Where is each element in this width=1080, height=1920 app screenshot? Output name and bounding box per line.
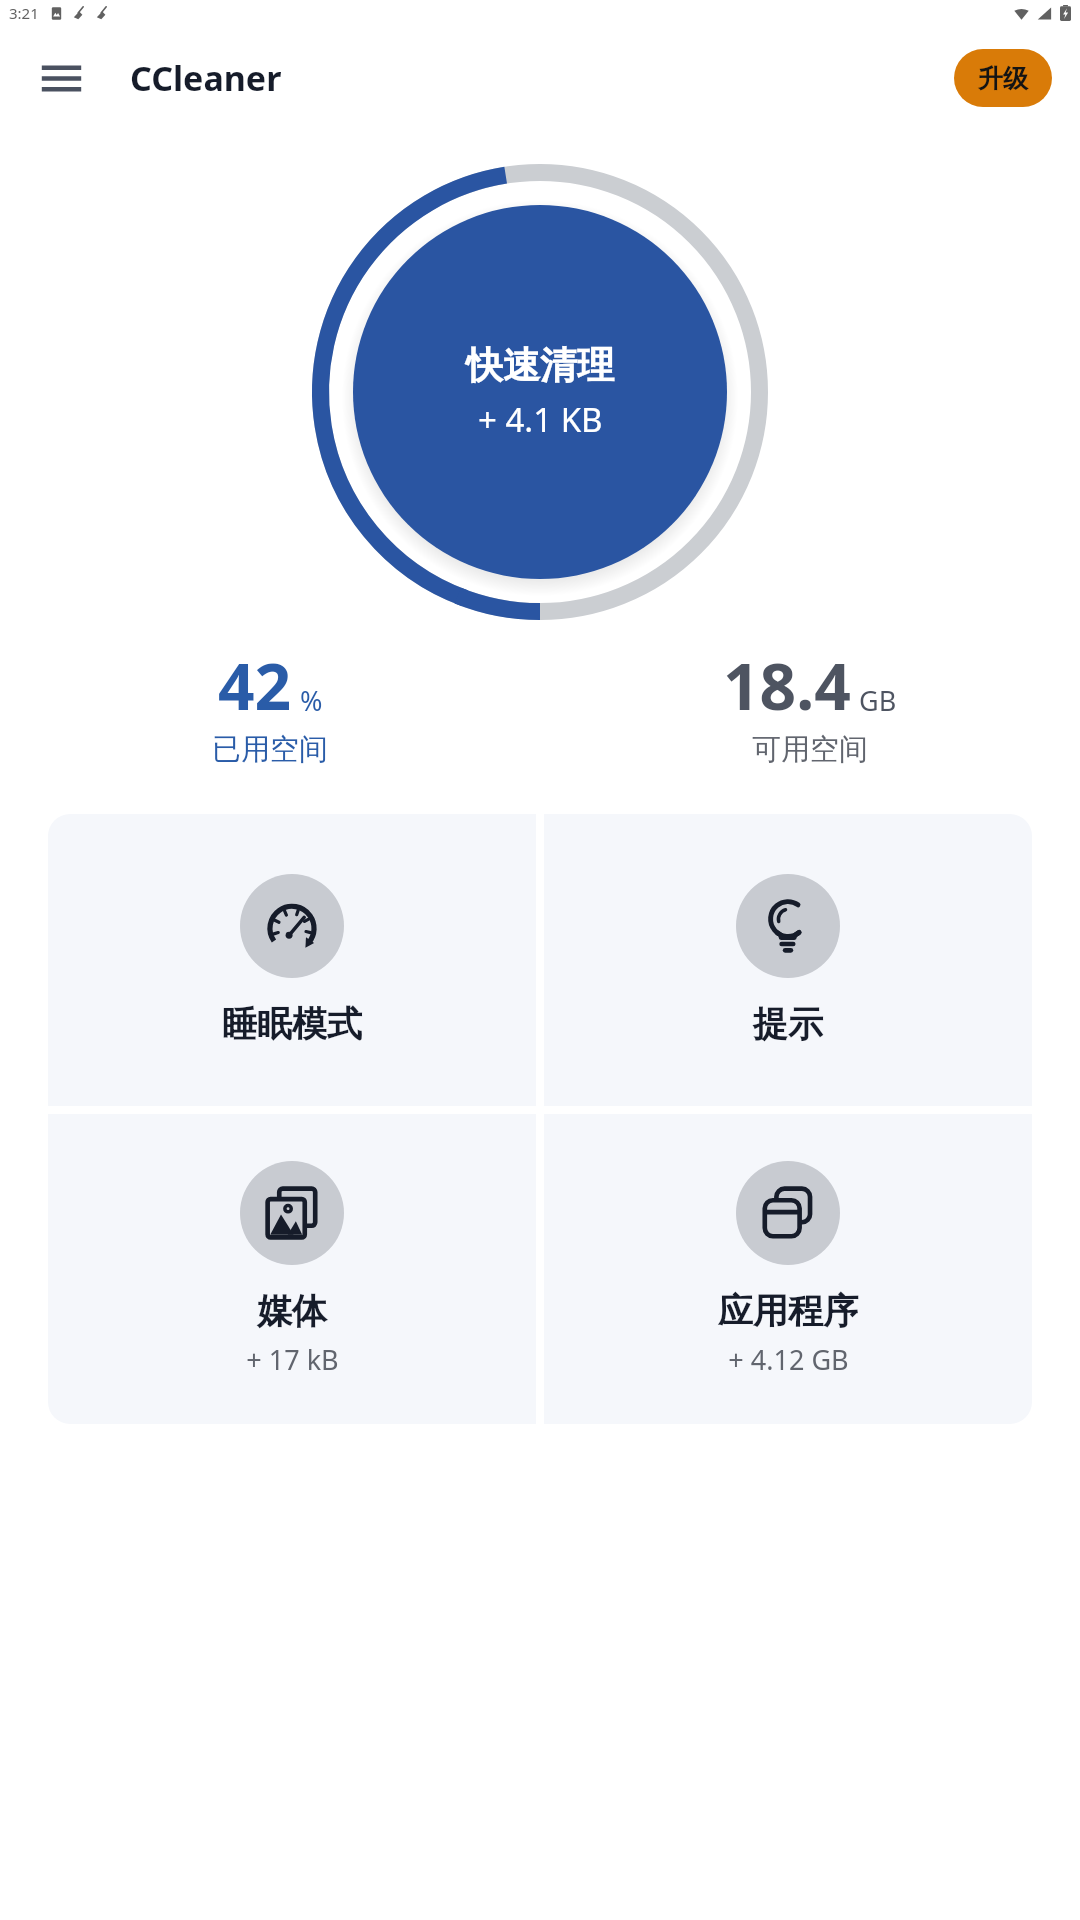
staticText: 18.4: [723, 642, 851, 729]
staticText: 提示: [753, 1002, 823, 1046]
staticText: 已用空间: [212, 731, 328, 768]
button[interactable]: Tips: [544, 814, 1032, 1106]
staticText: + 4.12 GB: [728, 1341, 849, 1378]
button[interactable]: Apps: [544, 1114, 1032, 1424]
staticText: 快速清理: [466, 342, 614, 389]
staticText: + 4.1 KB: [478, 397, 603, 442]
staticText: 42: [218, 642, 292, 729]
staticText: 升级: [978, 63, 1028, 94]
staticText: 可用空间: [752, 731, 868, 768]
button[interactable]: Sleep mode: [48, 814, 536, 1106]
button[interactable]: Media: [48, 1114, 536, 1424]
staticText: 媒体: [257, 1289, 327, 1333]
staticText: CCleaner: [130, 55, 282, 101]
button[interactable]: 快速清理: [353, 205, 727, 579]
staticText: 3:21: [9, 3, 39, 23]
staticText: 应用程序: [718, 1289, 858, 1333]
staticText: GB: [859, 682, 897, 719]
button[interactable]: Menu: [26, 43, 96, 113]
staticText: + 17 kB: [246, 1341, 339, 1378]
staticText: 睡眠模式: [222, 1002, 362, 1046]
staticText: %: [300, 682, 323, 719]
button[interactable]: 升级: [954, 49, 1052, 107]
